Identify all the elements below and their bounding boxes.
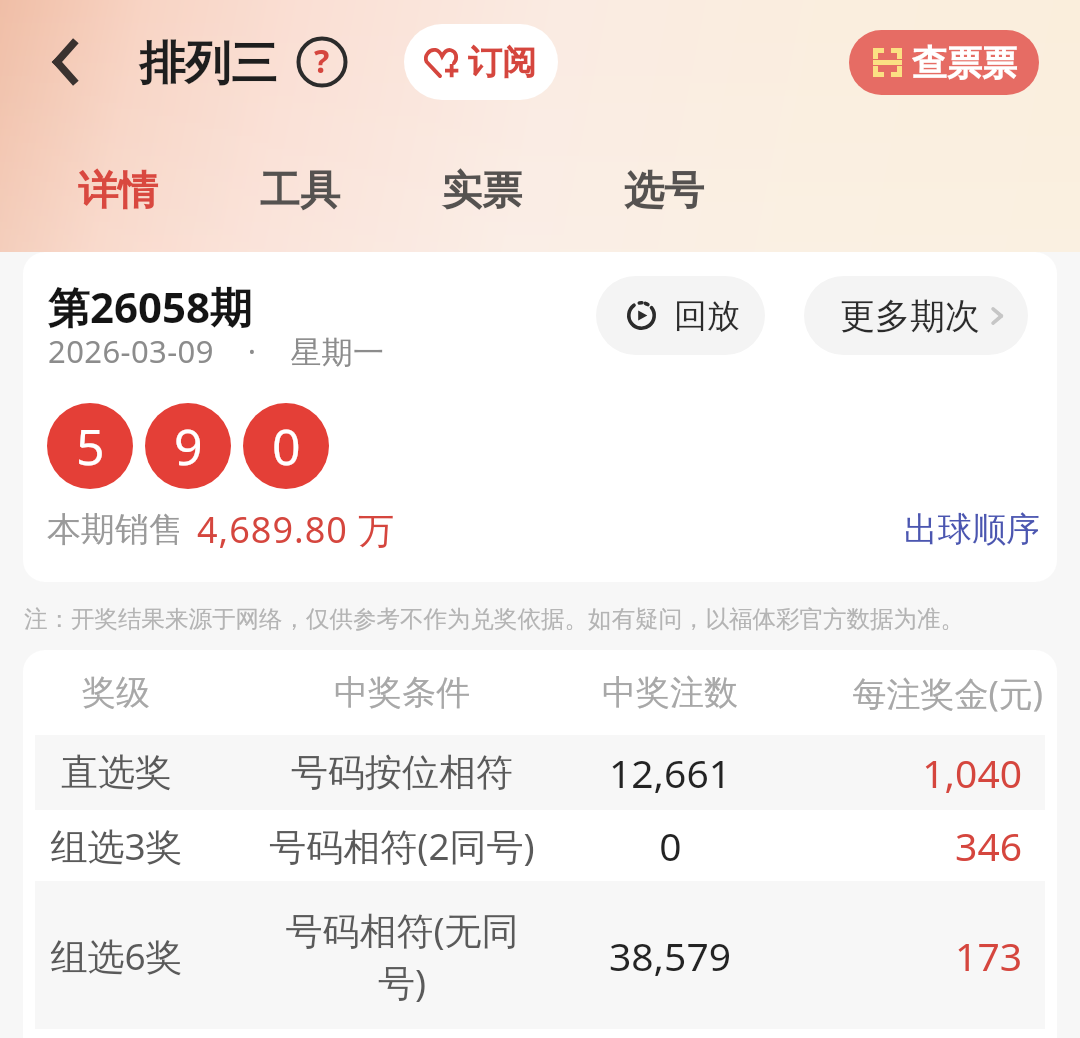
- button[interactable]: 工具: [238, 148, 362, 232]
- staticText: 中奖条件: [334, 671, 470, 714]
- staticText: 实票: [442, 165, 522, 215]
- staticText: 5: [76, 412, 105, 480]
- staticText: 选号: [624, 165, 704, 215]
- staticText: 第26058期: [48, 278, 253, 335]
- staticText: 38,579: [609, 929, 731, 982]
- staticText: 出球顺序: [904, 508, 1040, 551]
- staticText: 每注奖金(元): [852, 670, 1043, 716]
- button[interactable]: 实票: [420, 148, 544, 232]
- staticText: 9: [174, 412, 203, 480]
- button[interactable]: 组选3奖: [23, 810, 1057, 881]
- button[interactable]: 订阅: [404, 24, 558, 100]
- staticText: 2026-03-09 · 星期一: [48, 330, 385, 372]
- button[interactable]: 回放: [596, 276, 765, 355]
- staticText: 中奖注数: [602, 671, 738, 714]
- staticText: 号码相符(2同号): [269, 820, 535, 871]
- staticText: 组选6奖: [50, 930, 183, 981]
- button[interactable]: 直选奖: [23, 735, 1057, 810]
- staticText: 本期销售: [47, 508, 183, 551]
- staticText: 订阅: [468, 41, 536, 84]
- staticText: 号码相符(无同 号): [285, 904, 519, 1007]
- button[interactable]: 查票票: [849, 30, 1039, 95]
- staticText: 奖级: [82, 671, 150, 714]
- staticText: 1,040: [922, 746, 1022, 799]
- button[interactable]: Back: [36, 32, 96, 92]
- button[interactable]: 详情: [56, 148, 180, 232]
- staticText: 注：开奖结果来源于网络，仅供参考不作为兑奖依据。如有疑问，以福体彩官方数据为准。: [24, 604, 964, 634]
- button[interactable]: 选号: [602, 148, 726, 232]
- staticText: 12,661: [609, 746, 731, 799]
- staticText: 0: [659, 819, 682, 872]
- staticText: 详情: [78, 165, 158, 215]
- staticText: 查票票: [912, 41, 1017, 85]
- staticText: ?: [314, 39, 330, 83]
- staticText: 0: [272, 412, 301, 480]
- button[interactable]: Help: [294, 34, 350, 90]
- staticText: 工具: [260, 165, 340, 215]
- staticText: 4,689.80 万: [197, 505, 396, 554]
- staticText: 346: [955, 819, 1022, 872]
- staticText: 直选奖: [61, 749, 172, 796]
- staticText: 排列三: [139, 35, 277, 93]
- button[interactable]: 组选6奖: [23, 881, 1057, 1029]
- button[interactable]: 更多期次: [804, 276, 1028, 355]
- staticText: 号码按位相符: [291, 749, 513, 796]
- staticText: 组选3奖: [50, 820, 183, 871]
- staticText: 173: [955, 929, 1022, 982]
- staticText: 更多期次: [840, 294, 980, 338]
- staticText: 回放: [674, 295, 739, 337]
- button[interactable]: 出球顺序: [894, 508, 1050, 551]
